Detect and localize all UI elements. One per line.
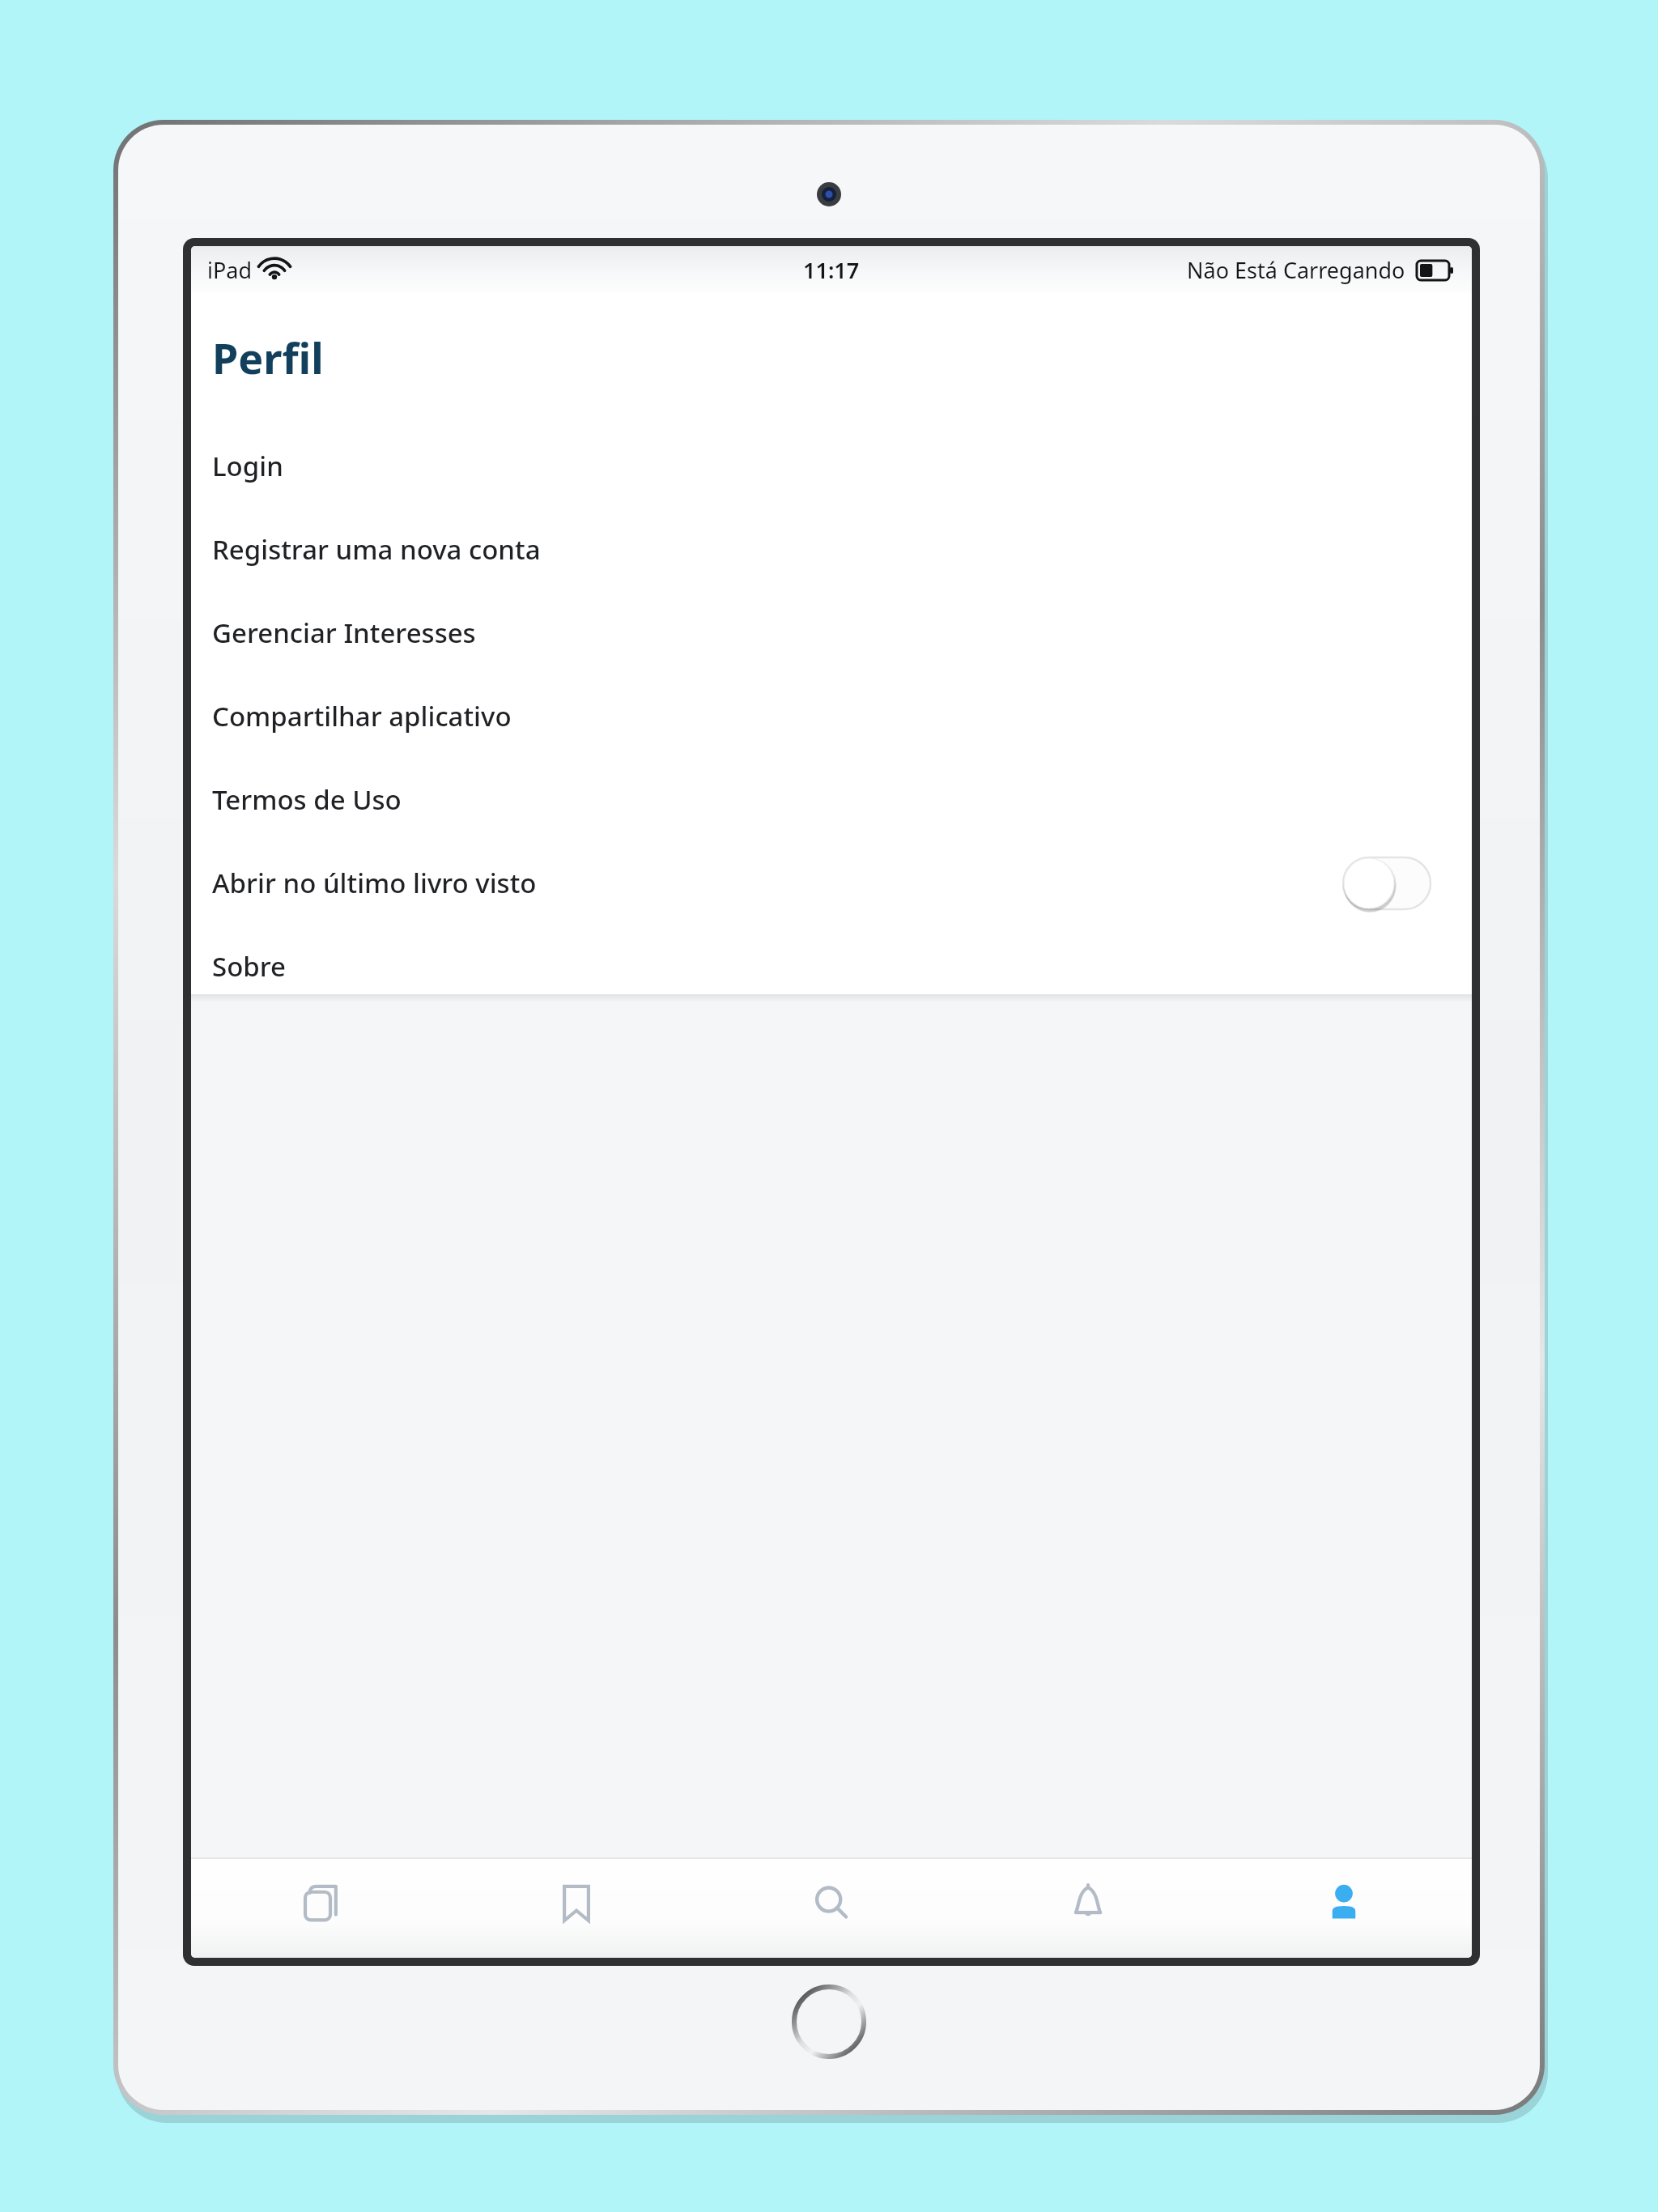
button[interactable]: Notifications (960, 1859, 1216, 1958)
staticText: 11:17 (803, 255, 860, 285)
button[interactable]: Sobre (191, 925, 1472, 1008)
button[interactable]: Termos de Uso (191, 758, 1472, 841)
staticText: Perfil (212, 329, 324, 386)
staticText: Compartilhar aplicativo (212, 698, 512, 734)
button[interactable]: Abrir no último livro visto (1342, 857, 1431, 910)
staticText: Abrir no último livro visto (212, 865, 537, 901)
button[interactable]: Login (191, 424, 1472, 508)
button[interactable]: Abrir no último livro visto (191, 841, 1472, 925)
button[interactable]: Compartilhar aplicativo (191, 674, 1472, 758)
button[interactable]: Search (704, 1859, 960, 1958)
staticText: iPad (207, 255, 253, 285)
staticText: Registrar uma nova conta (212, 531, 541, 568)
staticText: Gerenciar Interesses (212, 615, 476, 651)
button[interactable]: Library (191, 1859, 448, 1958)
staticText: Login (212, 448, 283, 484)
button[interactable]: Registrar uma nova conta (191, 508, 1472, 591)
button[interactable]: Bookmarks (448, 1859, 704, 1958)
button[interactable]: Profile (1216, 1859, 1472, 1958)
staticText: Sobre (212, 948, 287, 985)
button[interactable]: Gerenciar Interesses (191, 591, 1472, 674)
staticText: Não Está Carregando (1187, 255, 1405, 285)
staticText: Termos de Uso (212, 781, 402, 818)
